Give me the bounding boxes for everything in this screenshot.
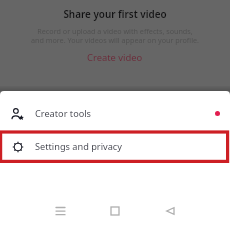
staticText: Share your first video: [0, 7, 230, 20]
staticText: Settings and privacy: [35, 140, 122, 153]
staticText: Create video: [87, 51, 143, 64]
button[interactable]: Creator tools: [0, 97, 230, 130]
button[interactable]: Settings and privacy: [0, 130, 230, 163]
button[interactable]: Create video: [81, 50, 149, 65]
button[interactable]: Home: [101, 197, 129, 225]
button[interactable]: Recents: [46, 197, 74, 225]
staticText: Creator tools: [35, 107, 92, 120]
staticText: Record or upload a video with effects, s…: [0, 26, 230, 45]
button[interactable]: Back: [156, 197, 184, 225]
